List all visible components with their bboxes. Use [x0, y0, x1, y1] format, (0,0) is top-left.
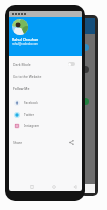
button[interactable]: Instagram	[14, 120, 75, 131]
staticText: rahul@codexbr.com	[12, 42, 38, 46]
button[interactable]: Twitter	[14, 109, 75, 120]
button[interactable]: Share	[13, 137, 75, 147]
staticText: Go to the Website	[13, 74, 42, 79]
button[interactable]: Go to the Website	[13, 71, 75, 81]
button[interactable]: Dark Mode	[13, 59, 75, 69]
staticText: Facebook	[24, 101, 38, 105]
staticText: Follow Me	[13, 86, 30, 91]
button[interactable]: Facebook	[14, 97, 75, 108]
button[interactable]: Back	[70, 182, 80, 192]
staticText: Twitter	[24, 113, 35, 117]
button[interactable]: Home	[49, 182, 59, 192]
button[interactable]: Share	[68, 139, 75, 146]
staticText: Dark Mode	[13, 62, 31, 67]
staticText: Rahul Chouhan	[12, 37, 39, 42]
button[interactable]: Recents	[27, 182, 37, 192]
staticText: Share	[13, 140, 23, 145]
staticText: Instagram	[24, 124, 40, 128]
